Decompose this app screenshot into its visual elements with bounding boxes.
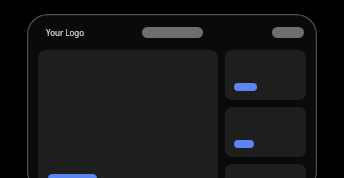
button[interactable]: Card action xyxy=(234,140,254,148)
button[interactable]: Navigation xyxy=(142,27,203,38)
button[interactable]: Card action xyxy=(225,50,306,100)
button[interactable]: Primary action xyxy=(38,50,218,178)
button[interactable]: Card action xyxy=(234,83,257,91)
button[interactable]: Primary action xyxy=(48,174,97,178)
button[interactable]: Your Logo xyxy=(46,27,85,38)
button[interactable]: Account xyxy=(272,27,304,38)
button[interactable]: Card action xyxy=(225,107,306,157)
